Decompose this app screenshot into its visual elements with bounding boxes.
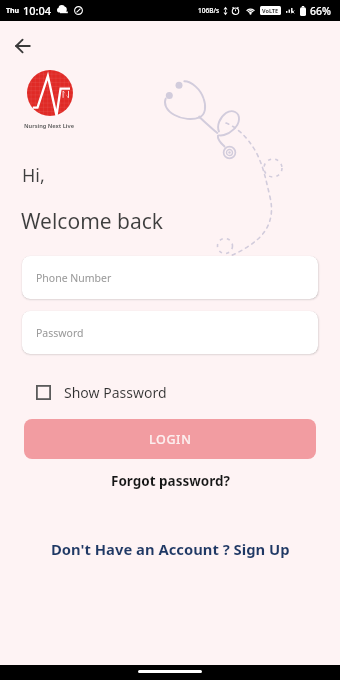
staticText: 106B/s (198, 6, 220, 15)
button[interactable]: Phone Number (22, 256, 318, 299)
staticText: Hi, (22, 163, 45, 188)
button[interactable]: Forgot password? (101, 468, 240, 494)
staticText: 66% (310, 4, 331, 18)
staticText: Nursing Next Live (24, 122, 75, 130)
staticText: Welcome back (21, 207, 164, 236)
staticText: Password (36, 326, 84, 340)
staticText: VoLTE (262, 7, 279, 14)
button[interactable]: Password (22, 311, 318, 354)
staticText: 10:04 (23, 3, 52, 18)
staticText: LOGIN (149, 431, 192, 448)
button[interactable]: Back (9, 32, 37, 60)
button[interactable]: Don't Have an Account ? Sign Up (41, 535, 300, 563)
button[interactable]: Show Password (30, 377, 173, 408)
staticText: Forgot password? (111, 472, 230, 490)
staticText: Thu (6, 6, 20, 16)
staticText: Don't Have an Account ? Sign Up (51, 539, 290, 559)
staticText: Phone Number (36, 271, 112, 285)
button[interactable]: LOGIN (24, 419, 316, 459)
staticText: Show Password (64, 383, 167, 402)
